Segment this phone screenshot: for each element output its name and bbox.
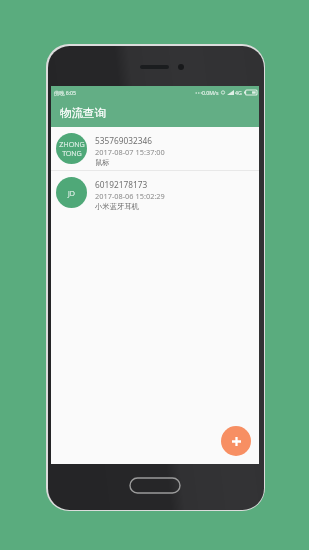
staticText: ZHONG TONG — [59, 139, 85, 158]
staticText: 60192178173 — [95, 179, 148, 190]
button[interactable]: Add — [221, 426, 251, 456]
staticText: 0.0M/s — [202, 89, 219, 96]
staticText: 535769032346 — [95, 135, 152, 146]
staticText: 2017-08-06 15:02:29 — [95, 191, 165, 201]
staticText: 傍晚 6:05 — [54, 89, 77, 96]
staticText: 鼠标 — [95, 158, 110, 167]
staticText: 物流查询 — [60, 106, 106, 120]
staticText: JD — [68, 188, 75, 198]
staticText: 2017-08-07 15:37:00 — [95, 147, 165, 157]
staticText: 4G — [235, 89, 242, 96]
button[interactable]: JD — [51, 171, 259, 214]
button[interactable]: ZHONG TONG — [51, 127, 259, 170]
staticText: 小米蓝牙耳机 — [95, 202, 139, 211]
